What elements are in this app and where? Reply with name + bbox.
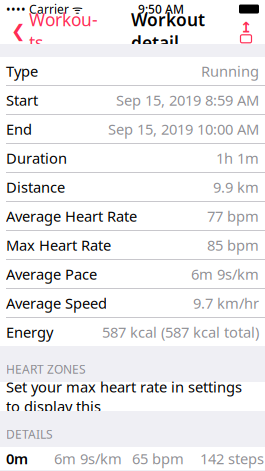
staticText: Sep 15, 2019 10:00 AM bbox=[108, 119, 259, 139]
staticText: Start bbox=[6, 90, 38, 110]
staticText: Workout detail bbox=[131, 8, 205, 54]
staticText: 9:50 AM bbox=[138, 1, 184, 17]
staticText: 6m 9s/km bbox=[54, 449, 122, 468]
staticText: Average Speed bbox=[6, 293, 107, 313]
staticText: 6m 9s/km bbox=[191, 264, 259, 284]
staticText: 587 kcal (587 kcal total) bbox=[102, 322, 259, 342]
staticText: Type bbox=[6, 61, 38, 81]
staticText: Workouts bbox=[29, 8, 98, 54]
staticText: 85 bpm bbox=[207, 235, 259, 255]
staticText: •••• Carrier ᯤ bbox=[6, 1, 83, 17]
staticText: 0m bbox=[6, 449, 28, 468]
button[interactable]: ❮ bbox=[4, 18, 105, 44]
staticText: Max Heart Rate bbox=[6, 235, 111, 255]
staticText: End bbox=[6, 119, 32, 139]
staticText: Average Pace bbox=[6, 264, 97, 284]
staticText: 65 bpm bbox=[132, 449, 184, 468]
staticText: ❮ bbox=[11, 21, 26, 41]
staticText: HEART ZONES bbox=[6, 361, 86, 377]
staticText: 1h 1m bbox=[216, 148, 259, 168]
staticText: Running bbox=[201, 61, 259, 81]
staticText: Energy bbox=[6, 322, 53, 342]
staticText: Distance bbox=[6, 177, 65, 197]
staticText: Sep 15, 2019 8:59 AM bbox=[116, 90, 259, 110]
staticText: 142 steps bbox=[200, 449, 264, 468]
staticText: Set your max heart rate in settings to d… bbox=[6, 377, 242, 416]
staticText: Duration bbox=[6, 148, 67, 168]
staticText: 77 bpm bbox=[207, 206, 259, 226]
staticText: ↥ bbox=[240, 19, 252, 36]
staticText: DETAILS bbox=[6, 426, 53, 442]
staticText: Average Heart Rate bbox=[6, 206, 137, 226]
button[interactable]: Share bbox=[231, 18, 261, 44]
staticText: 9.7 km/hr bbox=[193, 293, 259, 313]
staticText: 9.9 km bbox=[213, 177, 259, 197]
